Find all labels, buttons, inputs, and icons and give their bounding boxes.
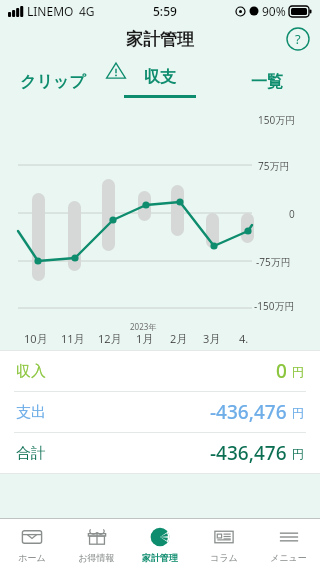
staticText: メニュー — [270, 552, 307, 563]
staticText: -436,476 — [210, 440, 287, 466]
button[interactable]: コラム — [192, 519, 256, 568]
button[interactable]: ヘルプ — [286, 27, 310, 51]
staticText: 2月 — [170, 331, 188, 346]
staticText: ? — [295, 30, 301, 48]
staticText: LINEMO — [27, 3, 74, 19]
button[interactable]: お得情報 — [64, 519, 128, 568]
button[interactable]: 収入 — [0, 351, 320, 391]
staticText: 合計 — [16, 444, 46, 463]
staticText: 5:59 — [153, 3, 177, 19]
staticText: 一覧 — [251, 72, 283, 92]
staticText: 11月 — [61, 331, 85, 346]
staticText: 4. — [239, 331, 249, 346]
staticText: 円 — [292, 446, 304, 461]
staticText: 円 — [292, 405, 304, 420]
button[interactable]: ホーム — [0, 519, 64, 568]
staticText: 支出 — [16, 403, 46, 422]
button[interactable]: 合計 — [0, 433, 320, 473]
staticText: -75万円 — [256, 255, 291, 269]
staticText: 家計管理 — [142, 552, 178, 563]
staticText: コラム — [210, 552, 238, 563]
staticText: 12月 — [98, 331, 122, 346]
staticText: 収入 — [16, 362, 46, 381]
staticText: クリップ — [20, 72, 86, 92]
staticText: ホーム — [18, 552, 46, 563]
staticText: 3月 — [203, 331, 221, 346]
staticText: 2023年 — [130, 321, 157, 332]
button[interactable]: クリップ — [0, 56, 106, 108]
staticText: 4G — [79, 3, 95, 19]
staticText: 0 — [276, 358, 287, 384]
button[interactable]: 収支 — [106, 56, 213, 108]
button[interactable]: メニュー — [256, 519, 320, 568]
staticText: 10月 — [24, 331, 48, 346]
staticText: 家計管理 — [126, 29, 194, 50]
staticText: 収支 — [144, 67, 176, 87]
staticText: 0 — [289, 207, 295, 221]
staticText: 円 — [292, 364, 304, 379]
staticText: 1月 — [136, 331, 154, 346]
staticText: 75万円 — [258, 159, 290, 173]
other: 注意 — [105, 60, 127, 82]
button[interactable]: 一覧 — [213, 56, 320, 108]
staticText: -150万円 — [254, 299, 295, 313]
button[interactable]: 支出 — [0, 392, 320, 432]
staticText: 90% — [262, 3, 286, 19]
staticText: 150万円 — [258, 113, 296, 127]
staticText: お得情報 — [78, 552, 115, 563]
button[interactable]: 家計管理 — [128, 519, 192, 568]
staticText: -436,476 — [210, 399, 287, 425]
